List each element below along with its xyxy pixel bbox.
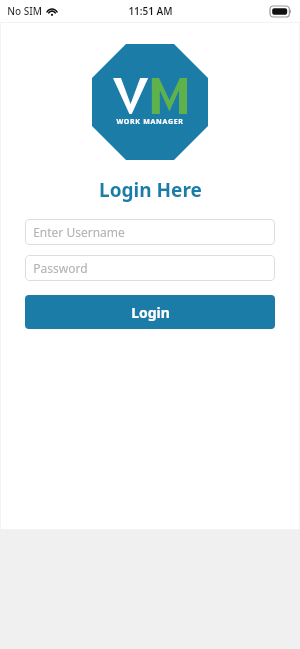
other: Battery [270, 6, 292, 17]
other: Wi-Fi [46, 5, 58, 17]
button[interactable]: Login [25, 295, 275, 329]
staticText: Login [131, 303, 170, 322]
staticText: Login Here [99, 177, 202, 203]
staticText: Password [33, 260, 88, 276]
staticText: 11:51 AM [128, 4, 173, 18]
staticText: WORK MANAGER [116, 117, 184, 127]
button[interactable]: Enter Username [25, 219, 275, 245]
staticText: Enter Username [33, 224, 125, 240]
button[interactable]: Password [25, 255, 275, 281]
staticText: No SIM [7, 4, 42, 18]
